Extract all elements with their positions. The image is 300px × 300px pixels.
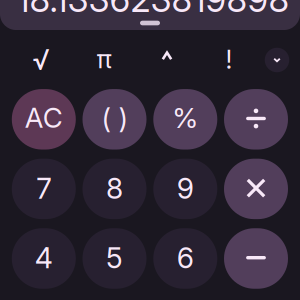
button[interactable]: 7 <box>12 159 76 219</box>
staticText: % <box>172 101 198 135</box>
button[interactable]: Exponent <box>144 41 190 77</box>
button[interactable]: Subtract <box>224 228 288 289</box>
staticText: 18.133623819898 <box>16 0 289 20</box>
button[interactable]: √ <box>18 41 64 77</box>
button[interactable]: Divide <box>224 89 288 149</box>
button[interactable]: ! <box>206 41 252 77</box>
button[interactable]: 9 <box>153 159 217 219</box>
staticText: 8 <box>106 171 123 206</box>
button[interactable]: ( ) <box>82 89 146 149</box>
button[interactable]: % <box>153 89 217 149</box>
button[interactable]: Multiply <box>224 159 288 219</box>
button[interactable]: 8 <box>82 159 146 219</box>
staticText: 5 <box>106 241 123 275</box>
staticText: 7 <box>36 171 51 206</box>
button[interactable]: AC <box>12 89 76 149</box>
button[interactable]: 6 <box>153 228 217 289</box>
staticText: 9 <box>177 171 194 206</box>
staticText: AC <box>25 101 63 134</box>
button[interactable]: 4 <box>12 228 76 289</box>
staticText: ! <box>225 44 232 75</box>
staticText: π <box>96 44 111 74</box>
button[interactable]: More functions <box>265 48 289 72</box>
staticText: 6 <box>177 241 194 275</box>
button[interactable]: π <box>81 41 127 77</box>
staticText: 4 <box>35 241 53 275</box>
staticText: √ <box>32 43 49 76</box>
button[interactable]: 5 <box>82 228 146 289</box>
staticText: ( ) <box>101 101 127 135</box>
